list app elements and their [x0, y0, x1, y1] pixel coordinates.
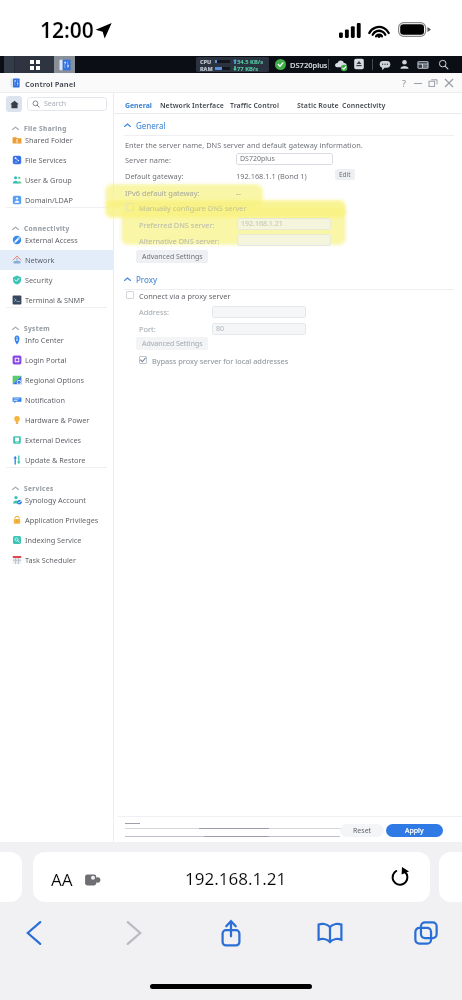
button[interactable]: Minimize [410, 75, 426, 91]
button[interactable]: Hardware & Power [0, 410, 113, 430]
button[interactable]: Widgets [417, 59, 429, 71]
button[interactable]: Connectivity [342, 101, 386, 110]
button[interactable]: Search [27, 97, 107, 111]
staticText: System [24, 324, 50, 333]
button[interactable]: Login Portal [0, 350, 113, 370]
staticText: Enter the server name, DNS server and de… [125, 140, 363, 150]
button[interactable] [237, 234, 331, 246]
button[interactable]: Network [0, 250, 113, 270]
button[interactable]: Shared Folder [0, 130, 113, 150]
staticText: Info Center [25, 335, 64, 345]
staticText: IPv6 default gateway: [125, 188, 200, 198]
button[interactable]: Back [12, 911, 56, 955]
button[interactable]: Forward [112, 911, 156, 955]
staticText: 192.168.1.21 [241, 219, 283, 229]
button[interactable]: Help [396, 75, 412, 91]
staticText: Address: [139, 307, 169, 317]
button[interactable]: Account [399, 59, 410, 70]
staticText: 34.5 KB/s [237, 58, 264, 66]
button[interactable]: Reset [340, 824, 384, 837]
button[interactable]: Notifications [379, 59, 391, 71]
button[interactable]: Control Panel [54, 56, 75, 73]
button[interactable]: External Access [0, 230, 113, 250]
button[interactable]: Tabs [404, 911, 448, 955]
staticText: Control Panel [25, 79, 76, 89]
staticText: Advanced Settings [142, 339, 203, 349]
button[interactable] [212, 306, 306, 318]
button[interactable]: Bookmarks [308, 911, 352, 955]
staticText: Search [44, 99, 67, 109]
button[interactable]: Terminal & SNMP [0, 290, 113, 310]
button[interactable]: Update & Restore [0, 450, 113, 470]
staticText: Default gateway: [125, 171, 184, 181]
button[interactable]: Home [6, 96, 22, 112]
button[interactable]: 192.168.1.21 [237, 218, 331, 230]
button[interactable]: Search [438, 59, 449, 70]
button[interactable]: Task Scheduler [0, 550, 113, 570]
button[interactable]: User & Group [0, 170, 113, 190]
button[interactable]: Resource Monitor [196, 57, 269, 72]
staticText: Server name: [125, 155, 171, 165]
button[interactable]: Close [441, 75, 457, 91]
button[interactable]: Synology Account [0, 490, 113, 510]
staticText: Proxy [136, 274, 157, 285]
button[interactable]: Edit [335, 169, 355, 180]
button[interactable]: Advanced Settings [136, 250, 208, 263]
button[interactable]: Main Menu [15, 56, 54, 73]
button[interactable]: Apply [386, 824, 443, 837]
button[interactable]: Services [0, 480, 113, 496]
button[interactable]: Previous tab [0, 852, 22, 902]
staticText: Reset [353, 826, 372, 836]
button[interactable]: Application Privileges [0, 510, 113, 530]
staticText: Synology Account [25, 495, 86, 505]
button[interactable]: External Devices [0, 430, 113, 450]
button[interactable]: Notification [0, 390, 113, 410]
button[interactable]: AA [33, 852, 430, 902]
staticText: Connectivity [342, 101, 386, 110]
staticText: 192.168.1.1 (Bond 1) [236, 171, 307, 181]
staticText: RAM [200, 65, 213, 72]
button[interactable]: Proxy [124, 274, 157, 285]
button[interactable]: Security [0, 270, 113, 290]
staticText: Edit [339, 170, 351, 179]
staticText: General [136, 120, 166, 131]
staticText: AA [51, 868, 73, 891]
staticText: Apply [405, 826, 424, 836]
button[interactable]: Advanced Settings [136, 337, 208, 350]
staticText: DS720plus [290, 60, 328, 70]
button[interactable]: Maximize [425, 75, 441, 91]
button[interactable]: Info Center [0, 330, 113, 350]
button[interactable]: DS720plus [236, 153, 333, 165]
staticText: Notification [25, 395, 65, 405]
button[interactable]: Static Route [297, 101, 339, 110]
staticText: Shared Folder [25, 135, 73, 145]
staticText: Port: [139, 324, 156, 334]
button[interactable]: 80 [212, 323, 306, 335]
staticText: Indexing Service [25, 535, 82, 545]
button[interactable]: Domain/LDAP [0, 190, 113, 210]
button[interactable]: Traffic Control [230, 101, 279, 110]
button[interactable]: General [124, 120, 166, 131]
staticText: 77 KB/s [237, 65, 259, 72]
button[interactable]: File Services [0, 150, 113, 170]
staticText: Terminal & SNMP [25, 295, 85, 305]
button[interactable]: System [0, 320, 113, 336]
button[interactable]: Network Interface [160, 101, 224, 110]
staticText: Alternative DNS server: [139, 236, 220, 246]
staticText: External Devices [25, 435, 82, 445]
button[interactable]: Indexing Service [0, 530, 113, 550]
staticText: Update & Restore [25, 455, 86, 465]
button[interactable]: Package Center [353, 58, 365, 70]
button[interactable]: Cloud Sync [334, 58, 348, 72]
button[interactable]: Share [209, 911, 253, 955]
staticText: 12:00 [40, 16, 94, 45]
staticText: Services [24, 484, 54, 493]
button[interactable]: File Sharing [0, 120, 113, 136]
button[interactable]: General [125, 101, 152, 110]
button[interactable]: Regional Options [0, 370, 113, 390]
staticText: User & Group [25, 175, 72, 185]
staticText: Advanced Settings [142, 252, 203, 262]
staticText: CPU [200, 58, 212, 65]
button[interactable]: Connectivity [0, 220, 113, 236]
